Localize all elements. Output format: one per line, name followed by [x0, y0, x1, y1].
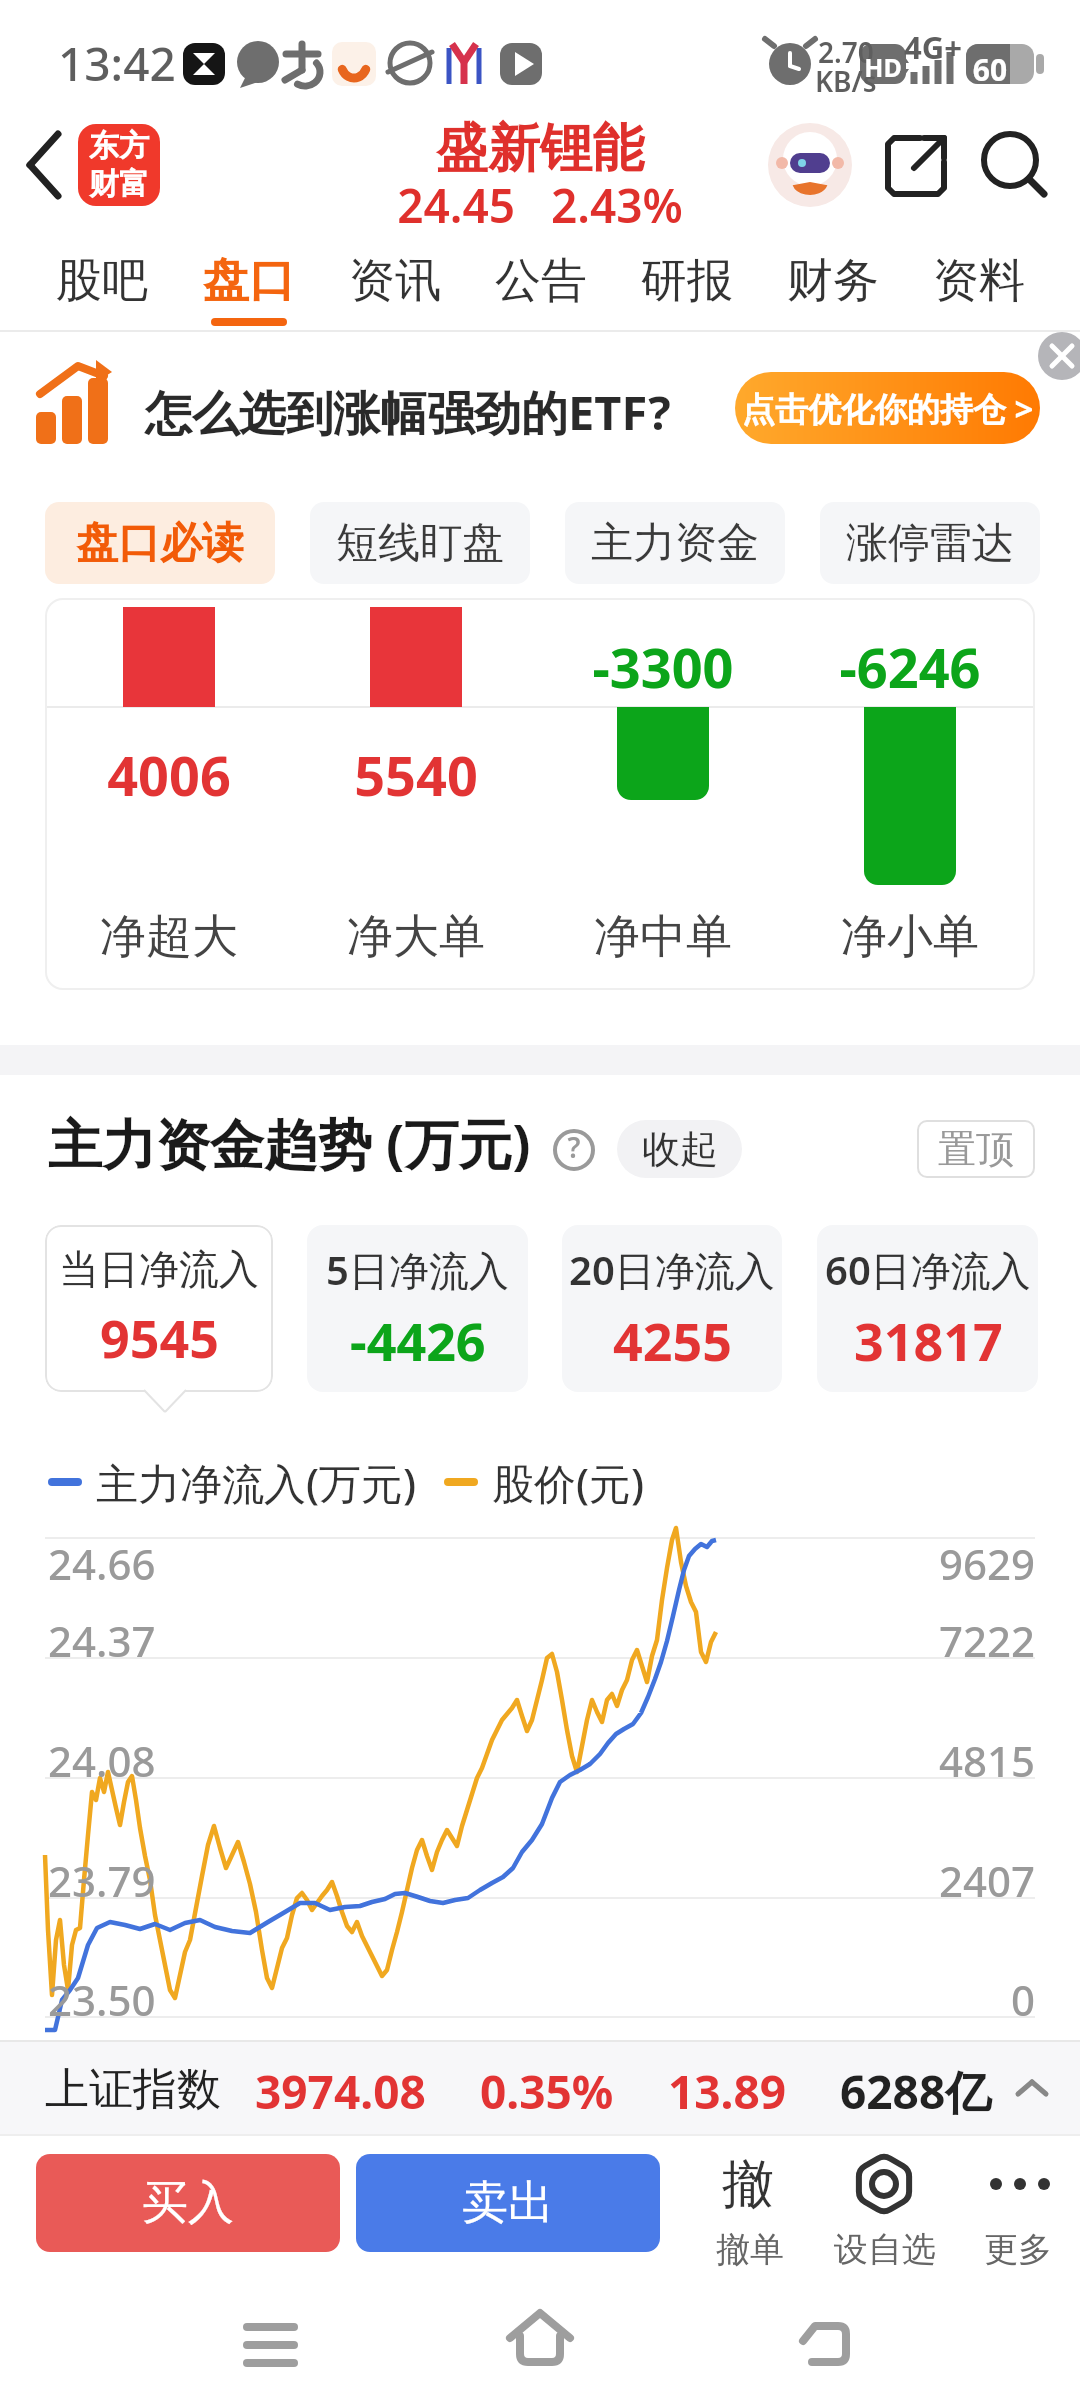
button[interactable]: 上证指数 [0, 2040, 1080, 2134]
staticText: 研报 [641, 252, 733, 310]
staticText: KB/s [815, 62, 877, 100]
staticText: -4426 [350, 1305, 486, 1376]
staticText: 财务 [787, 252, 879, 310]
button[interactable]: 研报 [614, 232, 760, 330]
staticText: 主力净流入(万元) [96, 1454, 417, 1511]
button[interactable] [750, 2280, 870, 2390]
staticText: 净大单 [321, 908, 511, 966]
staticText: 盘口 [203, 252, 295, 310]
button[interactable]: 盘口 [175, 232, 322, 330]
button[interactable] [880, 130, 952, 202]
staticText: 设自选 [834, 2228, 936, 2271]
button[interactable]: 20日净流入 [562, 1225, 782, 1392]
staticText: 2.70 [818, 33, 874, 71]
staticText: 5540 [321, 738, 511, 812]
button[interactable]: 5日净流入 [307, 1225, 528, 1392]
staticText: 13:42 [58, 32, 176, 95]
button[interactable]: 4006 [45, 598, 1035, 990]
button[interactable]: 财务 [760, 232, 906, 330]
staticText: 净超大 [74, 908, 264, 966]
staticText: 公告 [495, 252, 587, 310]
staticText: 7222 [835, 1612, 1035, 1669]
button[interactable]: 买入 [36, 2154, 340, 2252]
button[interactable]: 收起 [617, 1120, 742, 1178]
staticText: 4815 [835, 1732, 1035, 1789]
staticText: 13.89 [668, 2060, 787, 2123]
staticText: 资料 [933, 252, 1025, 310]
staticText: 股吧 [56, 252, 148, 310]
staticText: 9629 [835, 1535, 1035, 1592]
staticText: 置顶 [938, 1125, 1014, 1173]
button[interactable]: 主力资金 [565, 502, 785, 584]
staticText: 更多 [984, 2228, 1052, 2271]
staticText: -3300 [568, 630, 758, 704]
staticText: HD [861, 50, 905, 84]
staticText: 0.35% [480, 2060, 614, 2123]
button[interactable]: 涨停雷达 [820, 502, 1040, 584]
staticText: 4006 [74, 738, 264, 812]
button[interactable]: 资讯 [322, 232, 468, 330]
staticText: 31817 [854, 1305, 1003, 1376]
staticText: 9545 [100, 1302, 219, 1373]
button[interactable]: 怎么选到涨幅强劲的ETF? [0, 332, 1080, 480]
staticText: 资讯 [349, 252, 441, 310]
button[interactable] [10, 120, 80, 210]
staticText: 股价(元) [492, 1454, 645, 1511]
staticText: 撤单 [716, 2228, 784, 2271]
staticText: 涨停雷达 [846, 517, 1014, 570]
staticText: 主力资金 [591, 517, 759, 570]
staticText: 卖出 [462, 2174, 554, 2232]
button[interactable] [480, 2280, 600, 2390]
button[interactable] [978, 128, 1054, 204]
staticText: -6246 [815, 630, 1005, 704]
staticText: 3974.08 [255, 2060, 426, 2123]
button[interactable]: 置顶 [917, 1120, 1035, 1178]
button[interactable]: 点击优化你的持仓 > [735, 372, 1040, 444]
staticText: 23.79 [48, 1852, 156, 1909]
button[interactable]: 东方 [78, 124, 160, 206]
staticText: 盘口必读 [76, 517, 244, 570]
button[interactable] [768, 123, 852, 207]
staticText: 4255 [613, 1305, 732, 1376]
staticText: 主力资金趋势 (万元) [48, 1106, 531, 1180]
staticText: 怎么选到涨幅强劲的ETF? [145, 380, 671, 444]
button[interactable]: 更多 [970, 2144, 1070, 2270]
staticText: 收起 [642, 1125, 718, 1173]
staticText: 23.50 [48, 1971, 156, 2028]
staticText: 4G+ [904, 26, 962, 68]
staticText: 20日净流入 [569, 1242, 775, 1297]
staticText: 上证指数 [45, 2062, 221, 2117]
button[interactable]: 60日净流入 [817, 1225, 1038, 1392]
staticText: 24.37 [48, 1612, 156, 1669]
staticText: 当日净流入 [59, 1244, 259, 1294]
button[interactable]: 公告 [468, 232, 614, 330]
staticText: 财富 [89, 165, 149, 203]
staticText: 60日净流入 [825, 1242, 1031, 1297]
staticText: 买入 [142, 2174, 234, 2232]
button[interactable]: 设自选 [830, 2144, 940, 2270]
staticText: 盛新锂能 [340, 116, 740, 182]
staticText: 24.66 [48, 1535, 156, 1592]
staticText: 6288亿 [840, 2060, 992, 2123]
staticText: 24.45 2.43% [340, 174, 740, 237]
staticText: 2407 [835, 1852, 1035, 1909]
button[interactable]: 卖出 [356, 2154, 660, 2252]
staticText: 点击优化你的持仓 > [742, 386, 1034, 431]
button[interactable]: 盘口必读 [45, 502, 275, 584]
staticText: 24.08 [48, 1732, 156, 1789]
button[interactable]: 短线盯盘 [310, 502, 530, 584]
staticText: 撤 [722, 2152, 774, 2218]
staticText: 0 [835, 1971, 1035, 2028]
staticText: 60 [970, 49, 1010, 90]
button[interactable]: 股吧 [28, 232, 175, 330]
button[interactable]: 资料 [906, 232, 1052, 330]
button[interactable]: 当日净流入 [45, 1225, 273, 1392]
button[interactable] [210, 2280, 330, 2390]
staticText: ? [552, 1128, 596, 1166]
staticText: 净中单 [568, 908, 758, 966]
staticText: 5日净流入 [326, 1242, 509, 1297]
staticText: 短线盯盘 [336, 517, 504, 570]
staticText: 净小单 [815, 908, 1005, 966]
button[interactable]: 撤 [700, 2144, 800, 2270]
staticText: 东方 [89, 127, 149, 165]
